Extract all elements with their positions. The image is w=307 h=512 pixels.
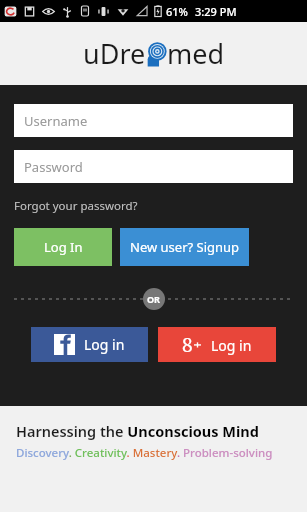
staticText: uDre <box>83 35 146 72</box>
staticText: Log in <box>84 335 125 354</box>
button[interactable]: Log in <box>31 327 148 362</box>
button[interactable]: New user? Signup <box>120 228 249 266</box>
staticText: Log In <box>44 238 83 256</box>
staticText: OR <box>147 293 161 305</box>
staticText: med <box>167 35 225 72</box>
button[interactable]: 8 <box>158 327 276 362</box>
staticText: Log in <box>211 336 252 355</box>
button[interactable]: Password <box>14 150 293 183</box>
button[interactable]: Log In <box>14 228 112 266</box>
staticText: 8 <box>182 332 193 358</box>
staticText: 61% <box>166 4 188 19</box>
staticText: New user? Signup <box>130 238 240 256</box>
staticText: 3:29 PM <box>195 4 237 19</box>
button[interactable]: Username <box>14 104 293 137</box>
staticText: Password <box>24 158 83 176</box>
staticText: Discovery. Creativity. Mastery. Problem-… <box>16 445 273 461</box>
staticText: Forgot your password? <box>14 198 138 214</box>
button[interactable]: Forgot your password? <box>14 198 138 214</box>
staticText: Username <box>24 112 88 130</box>
staticText: Harnessing the Unconscious Mind <box>16 421 259 441</box>
